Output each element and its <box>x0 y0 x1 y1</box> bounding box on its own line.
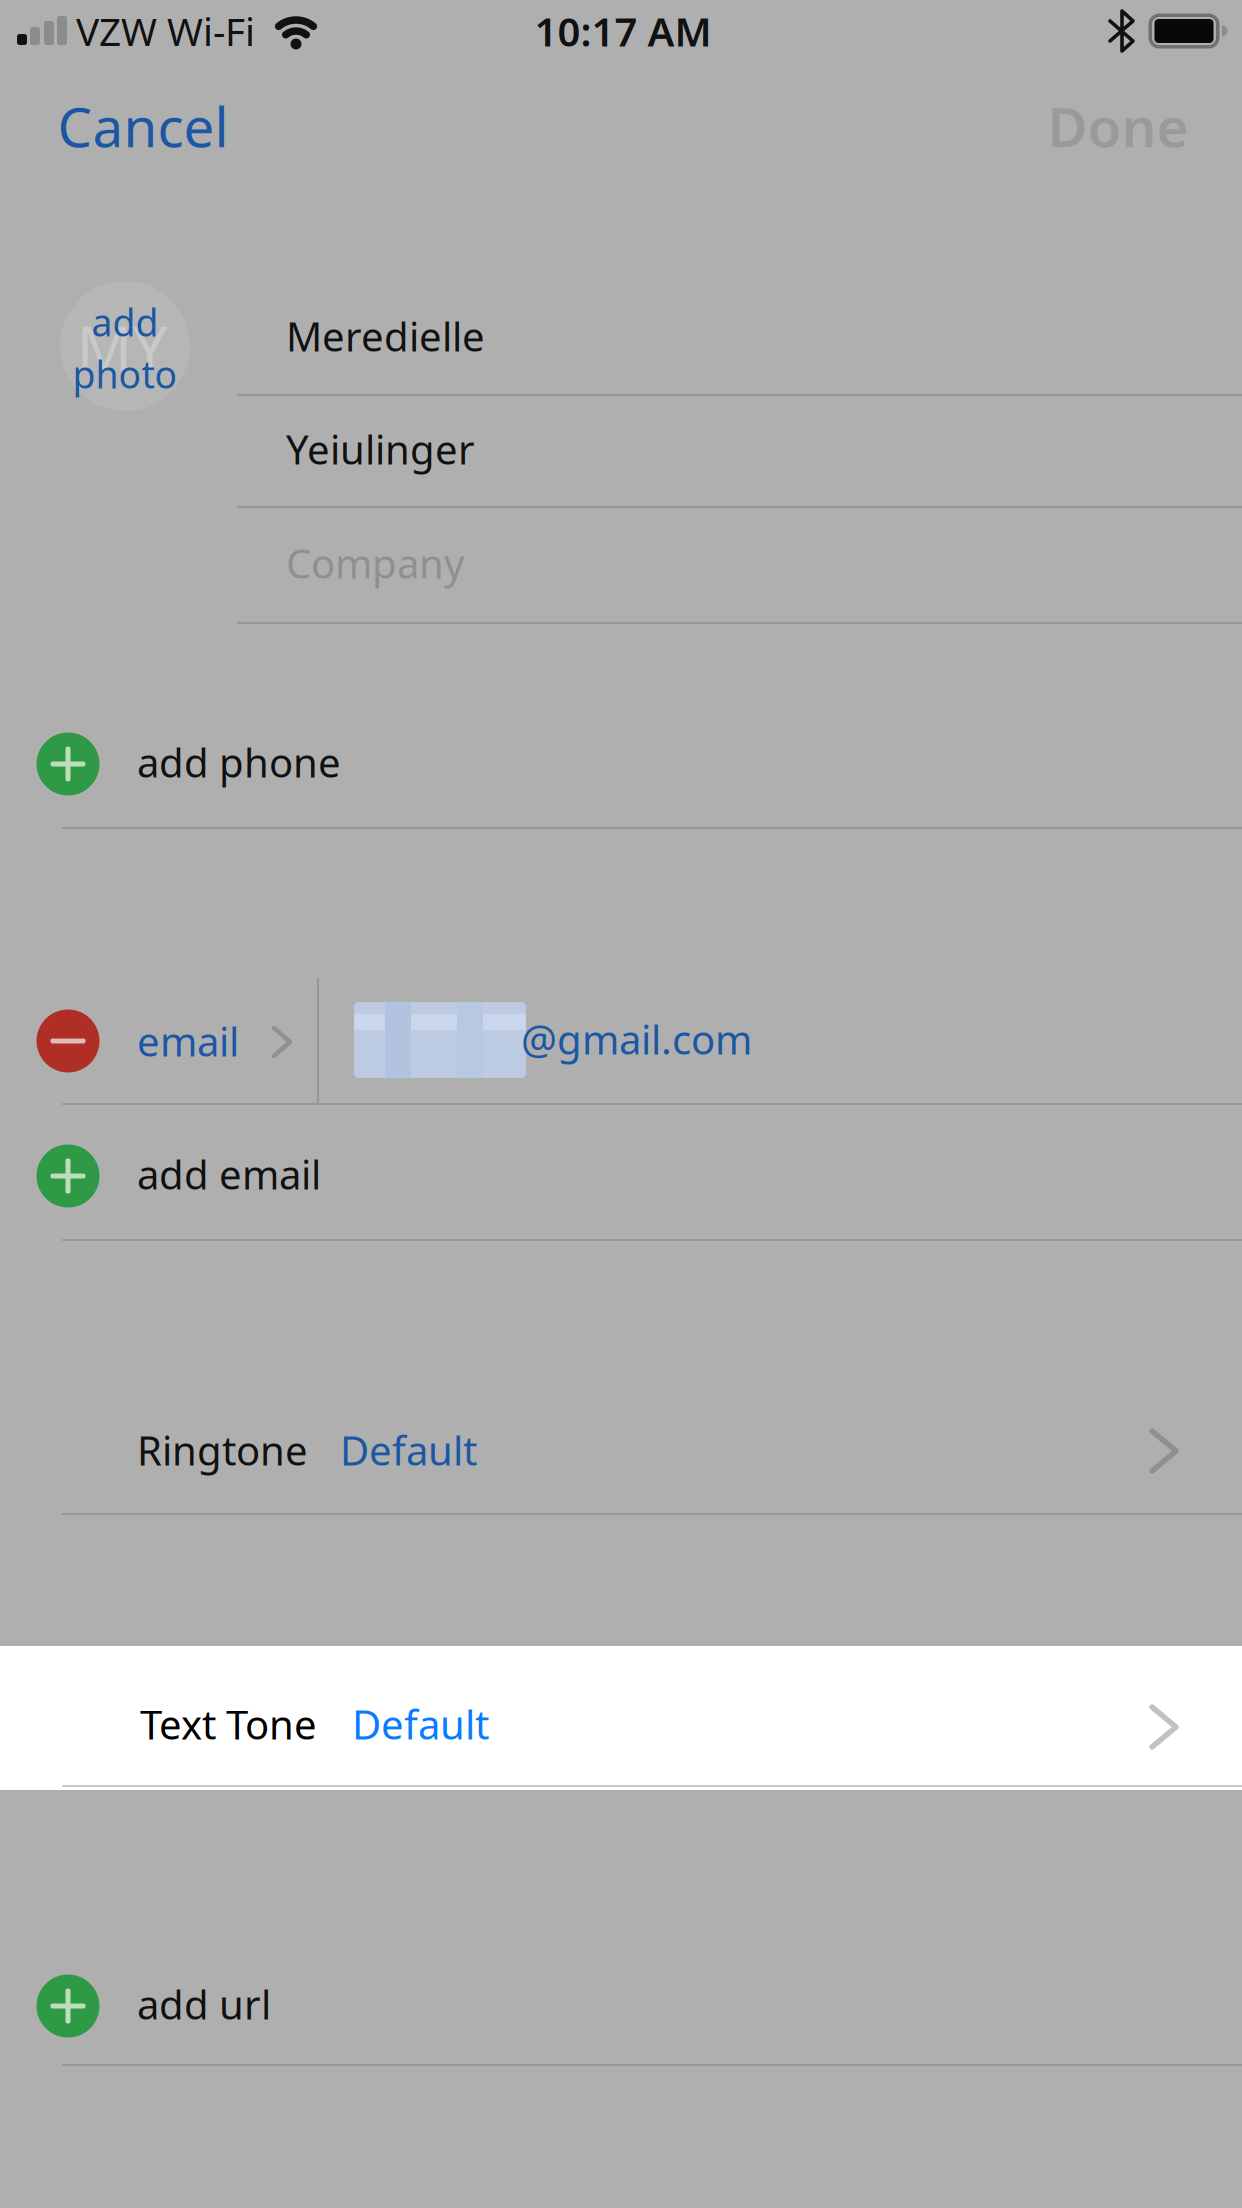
button[interactable]: add url <box>0 1942 1242 2070</box>
staticText: Yeiulinger <box>286 422 475 475</box>
staticText: Default <box>340 1423 477 1476</box>
staticText: Company <box>286 536 464 589</box>
staticText: Meredielle <box>286 309 485 362</box>
button[interactable]: email <box>119 989 317 1093</box>
staticText: Done <box>1047 90 1188 162</box>
staticText: email <box>137 1014 239 1067</box>
staticText: @gmail.com <box>521 1012 752 1065</box>
button[interactable]: Done <box>1047 90 1188 162</box>
staticText: Cancel <box>57 90 228 162</box>
staticText: VZW Wi-Fi <box>76 5 255 57</box>
staticText: add email <box>137 1147 321 1200</box>
staticText: 10:17 AM <box>534 4 711 57</box>
button[interactable]: add email <box>0 1112 1242 1240</box>
staticText: Default <box>352 1697 489 1750</box>
button[interactable]: Text Tone <box>0 1646 1242 1790</box>
staticText: add phone <box>137 735 341 788</box>
button[interactable]: Delete email <box>36 1009 99 1072</box>
staticText: add url <box>137 1977 271 2030</box>
button[interactable]: Ringtone <box>0 1386 1242 1514</box>
staticText: Ringtone <box>137 1423 308 1476</box>
staticText: add <box>91 297 158 347</box>
button[interactable]: add phone <box>0 700 1242 828</box>
staticText: photo <box>72 349 177 399</box>
button[interactable]: Cancel <box>57 90 228 162</box>
button[interactable]: add photo <box>60 281 190 411</box>
staticText: MY <box>76 306 167 388</box>
staticText: Text Tone <box>140 1697 317 1750</box>
